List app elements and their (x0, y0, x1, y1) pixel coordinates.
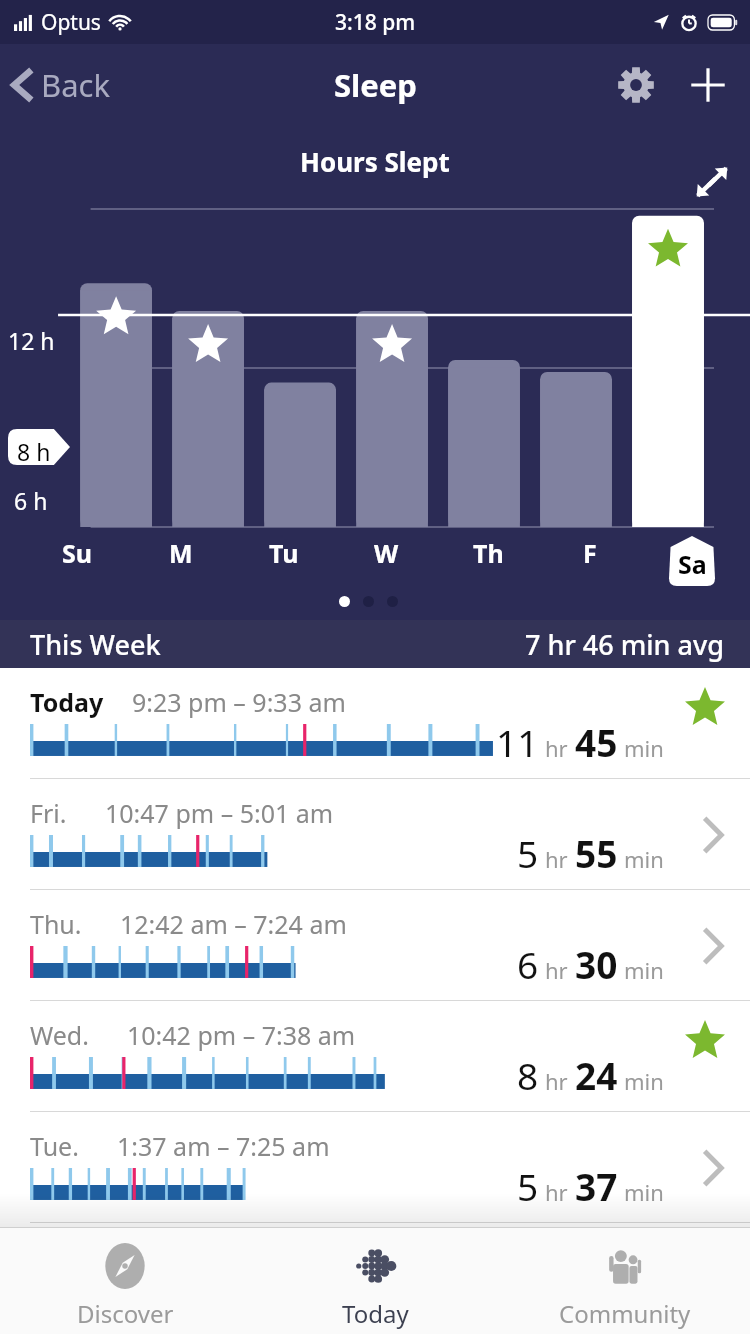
staticText: Tue. (30, 1129, 79, 1163)
staticText: M (169, 536, 193, 570)
staticText: Hours Slept (300, 144, 450, 179)
staticText: Fri. (30, 796, 67, 830)
staticText: hr (545, 1066, 568, 1096)
staticText: F (583, 536, 597, 570)
staticText: Today (30, 685, 104, 719)
staticText: 10:42 pm – 7:38 am (127, 1018, 356, 1052)
staticText: Discover (77, 1297, 174, 1330)
staticText: Tu (269, 536, 299, 570)
staticText: This Week (30, 626, 161, 663)
staticText: Wed. (30, 1018, 89, 1052)
staticText: 55 (575, 828, 618, 878)
staticText: Community (559, 1297, 691, 1330)
staticText: 3:18 pm (335, 8, 416, 37)
staticText: W (374, 536, 399, 570)
staticText: 11 (496, 717, 539, 767)
button[interactable]: Today (250, 1228, 500, 1334)
button[interactable]: Expand chart (684, 154, 740, 210)
staticText: min (624, 1177, 664, 1207)
staticText: Thu. (30, 907, 82, 941)
staticText: 30 (575, 939, 618, 989)
staticText: 12:42 am – 7:24 am (120, 907, 347, 941)
staticText: Today (342, 1297, 409, 1330)
button[interactable]: Community (500, 1228, 750, 1334)
button[interactable]: Add sleep log (682, 59, 734, 111)
staticText: 8 (517, 1050, 539, 1100)
button[interactable]: Thu. (0, 890, 750, 1001)
staticText: Th (473, 536, 504, 570)
button[interactable]: This Week (0, 620, 750, 668)
staticText: min (624, 844, 664, 874)
staticText: hr (545, 1177, 568, 1207)
staticText: 37 (575, 1161, 618, 1211)
staticText: hr (545, 955, 568, 985)
staticText: min (624, 733, 664, 763)
staticText: 0 (14, 644, 28, 675)
staticText: hr (545, 733, 568, 763)
button[interactable]: Wed. (0, 1001, 750, 1112)
staticText: min (624, 1066, 664, 1096)
button[interactable]: Discover (0, 1228, 250, 1334)
staticText: Sleep (334, 64, 417, 106)
staticText: Su (62, 536, 93, 570)
button[interactable]: Settings (610, 59, 662, 111)
staticText: 1:37 am – 7:25 am (117, 1129, 330, 1163)
staticText: 45 (575, 717, 618, 767)
staticText: Sa (678, 547, 707, 581)
staticText: 6 h (14, 485, 48, 516)
staticText: 5 (517, 1161, 539, 1211)
staticText: 7 hr 46 min avg (525, 626, 724, 663)
staticText: 24 (575, 1050, 618, 1100)
button[interactable]: Fri. (0, 779, 750, 890)
staticText: 10:47 pm – 5:01 am (105, 796, 334, 830)
staticText: hr (545, 844, 568, 874)
staticText: 6 (517, 939, 539, 989)
staticText: 5 (517, 828, 539, 878)
staticText: min (624, 955, 664, 985)
button[interactable]: Today (0, 668, 750, 779)
button[interactable]: Tue. (0, 1112, 750, 1223)
staticText: Back (41, 64, 110, 106)
staticText: 9:23 pm – 9:33 am (132, 685, 346, 719)
button[interactable]: Back (0, 56, 126, 114)
staticText: 12 h (8, 325, 55, 356)
staticText: Optus (41, 8, 101, 37)
staticText: 8 h (17, 436, 51, 467)
